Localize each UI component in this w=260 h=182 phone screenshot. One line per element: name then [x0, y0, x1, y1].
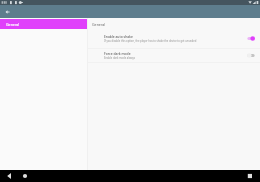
staticText: General	[6, 22, 20, 27]
staticText: Force dark mode	[104, 51, 131, 55]
button[interactable]: Back	[0, 170, 18, 182]
button[interactable]: Enable auto shake	[88, 28, 260, 48]
button[interactable]: Force dark mode	[88, 49, 260, 62]
button[interactable]: Toggle on	[245, 34, 255, 43]
button[interactable]: Toggle off	[245, 51, 255, 60]
staticText: Enable auto shake	[104, 34, 133, 38]
staticText: If you disable this option, the player h…	[104, 39, 197, 43]
button[interactable]: Back	[3, 7, 13, 17]
button[interactable]: General	[0, 19, 87, 29]
staticText: General	[92, 22, 106, 27]
staticText: Enable dark mode always	[104, 56, 135, 60]
